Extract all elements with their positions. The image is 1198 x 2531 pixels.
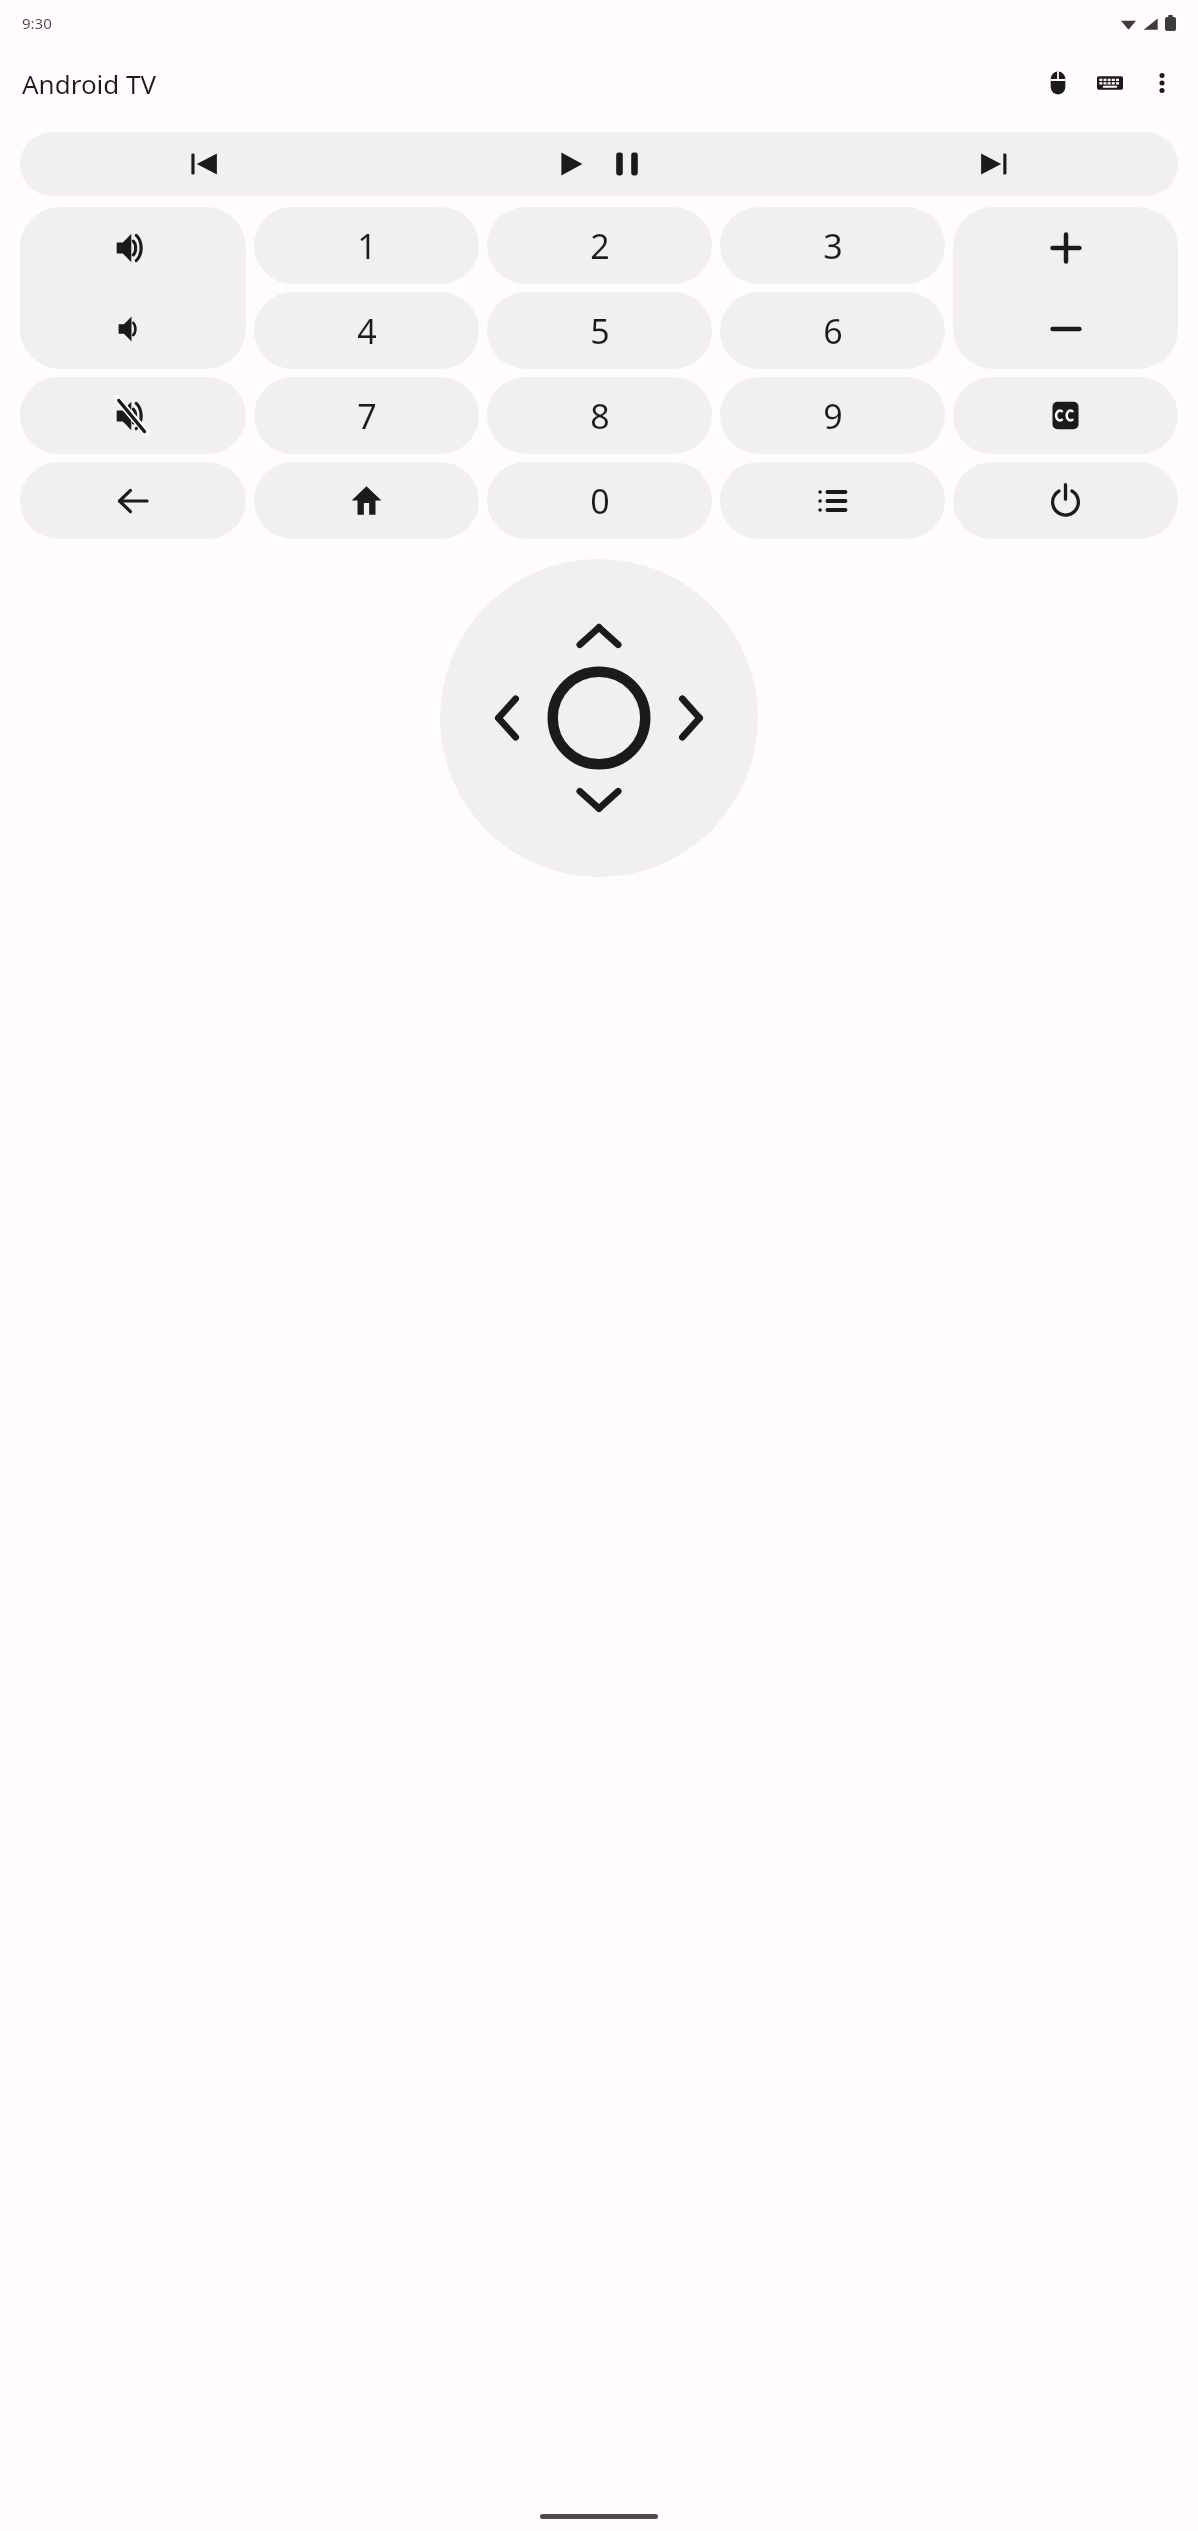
- button[interactable]: Home: [254, 462, 479, 539]
- button[interactable]: 9: [720, 377, 945, 454]
- staticText: 0: [590, 478, 610, 524]
- button[interactable]: Down: [557, 757, 641, 841]
- button[interactable]: Mouse mode: [1032, 57, 1084, 109]
- button[interactable]: Pause: [599, 136, 655, 192]
- button[interactable]: Channel down: [953, 288, 1178, 369]
- staticText: 4: [357, 308, 377, 354]
- button[interactable]: Volume up: [20, 207, 246, 288]
- button[interactable]: 4: [254, 292, 479, 369]
- staticText: Android TV: [22, 66, 157, 101]
- button[interactable]: 7: [254, 377, 479, 454]
- button[interactable]: Channel up: [953, 207, 1178, 288]
- button[interactable]: 6: [720, 292, 945, 369]
- button[interactable]: Back: [20, 462, 246, 539]
- button[interactable]: More options: [1136, 57, 1188, 109]
- button[interactable]: 2: [487, 207, 712, 284]
- staticText: 1: [357, 223, 377, 269]
- button[interactable]: Next: [810, 132, 1178, 196]
- button[interactable]: 0: [487, 462, 712, 539]
- staticText: 3: [823, 223, 843, 269]
- staticText: 6: [823, 308, 843, 354]
- button[interactable]: Guide: [720, 462, 945, 539]
- button[interactable]: Volume down: [20, 288, 246, 369]
- button[interactable]: Up: [557, 595, 641, 679]
- button[interactable]: Power: [953, 462, 1178, 539]
- button[interactable]: Mute: [20, 377, 246, 454]
- staticText: 2: [590, 223, 610, 269]
- staticText: 8: [590, 393, 610, 439]
- button[interactable]: Select: [545, 664, 653, 772]
- button[interactable]: Previous: [20, 132, 387, 196]
- staticText: 5: [590, 308, 610, 354]
- staticText: 9:30: [22, 13, 52, 33]
- button[interactable]: 8: [487, 377, 712, 454]
- button[interactable]: Play: [543, 136, 599, 192]
- button[interactable]: Keyboard: [1084, 57, 1136, 109]
- button[interactable]: Right: [648, 676, 732, 760]
- button[interactable]: 5: [487, 292, 712, 369]
- button[interactable]: 3: [720, 207, 945, 284]
- button[interactable]: Left: [466, 676, 550, 760]
- button[interactable]: Closed captions: [953, 377, 1178, 454]
- button[interactable]: 1: [254, 207, 479, 284]
- staticText: 9: [823, 393, 843, 439]
- staticText: 7: [357, 393, 377, 439]
